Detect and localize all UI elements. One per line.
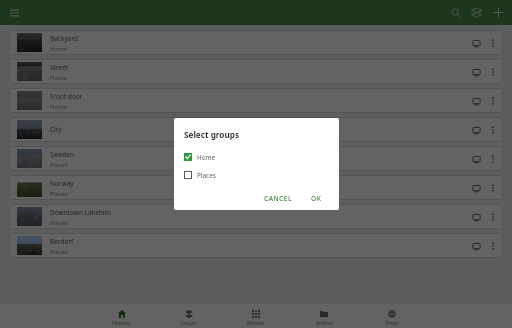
staticText: OK (311, 194, 322, 203)
staticText: Streams (112, 320, 131, 327)
staticText: Groups (180, 320, 197, 327)
staticText: Select groups (184, 129, 240, 140)
button[interactable]: Berdorf (9, 233, 503, 258)
staticText: Proxy (386, 320, 399, 327)
staticText: Home (50, 45, 68, 53)
staticText: City (50, 125, 62, 134)
button[interactable]: City (9, 117, 503, 142)
button[interactable]: Groups (155, 304, 222, 328)
staticText: Home (197, 153, 216, 162)
staticText: Places (50, 190, 68, 198)
staticText: Places (197, 171, 216, 180)
staticText: Home (50, 103, 68, 111)
button[interactable]: Cast (468, 238, 484, 254)
button[interactable]: Cast (468, 151, 484, 167)
staticText: Places (50, 219, 68, 227)
button[interactable]: Downtown Lakehills (9, 204, 503, 229)
button[interactable]: Search (445, 2, 466, 23)
staticText: Monitor (247, 320, 266, 327)
button[interactable]: More options (485, 180, 501, 196)
staticText: Norway (50, 179, 74, 188)
button[interactable]: Home (174, 148, 339, 166)
button[interactable]: Groups (466, 2, 487, 23)
staticText: Places (50, 161, 68, 169)
button[interactable]: Backyard (9, 30, 503, 55)
button[interactable]: OK (307, 191, 326, 206)
button[interactable]: Add (488, 2, 509, 23)
button[interactable]: Front door (9, 88, 503, 113)
button[interactable]: Cast (468, 93, 484, 109)
staticText: Street (50, 63, 69, 72)
staticText: Sweden (50, 150, 75, 159)
button[interactable]: Cast (468, 180, 484, 196)
button[interactable]: More options (485, 122, 501, 138)
button[interactable]: Norway (9, 175, 503, 200)
button[interactable]: More options (485, 209, 501, 225)
staticText: Home (50, 74, 68, 82)
button[interactable]: Menu (4, 2, 25, 23)
button[interactable]: Sweden (9, 146, 503, 171)
button[interactable]: CANCEL (260, 191, 297, 206)
button[interactable]: More options (485, 238, 501, 254)
staticText: Berdorf (50, 237, 74, 246)
staticText: Downtown Lakehills (50, 208, 111, 217)
button[interactable]: Monitor (222, 304, 290, 328)
button[interactable]: Cast (468, 64, 484, 80)
button[interactable]: Cast (468, 209, 484, 225)
staticText: Front door (50, 92, 83, 101)
button[interactable]: Places (174, 166, 339, 184)
button[interactable]: Proxy (358, 304, 426, 328)
button[interactable]: Archive (290, 304, 358, 328)
button[interactable]: More options (485, 93, 501, 109)
button[interactable]: Cast (468, 122, 484, 138)
button[interactable]: More options (485, 151, 501, 167)
staticText: Archive (316, 320, 333, 327)
button[interactable]: More options (485, 64, 501, 80)
button[interactable]: Cast (468, 35, 484, 51)
button[interactable]: More options (485, 35, 501, 51)
staticText: CANCEL (264, 194, 293, 203)
button[interactable]: Street (9, 59, 503, 84)
staticText: Places (50, 248, 68, 256)
button[interactable]: Streams (88, 304, 155, 328)
staticText: Backyard (50, 34, 78, 43)
